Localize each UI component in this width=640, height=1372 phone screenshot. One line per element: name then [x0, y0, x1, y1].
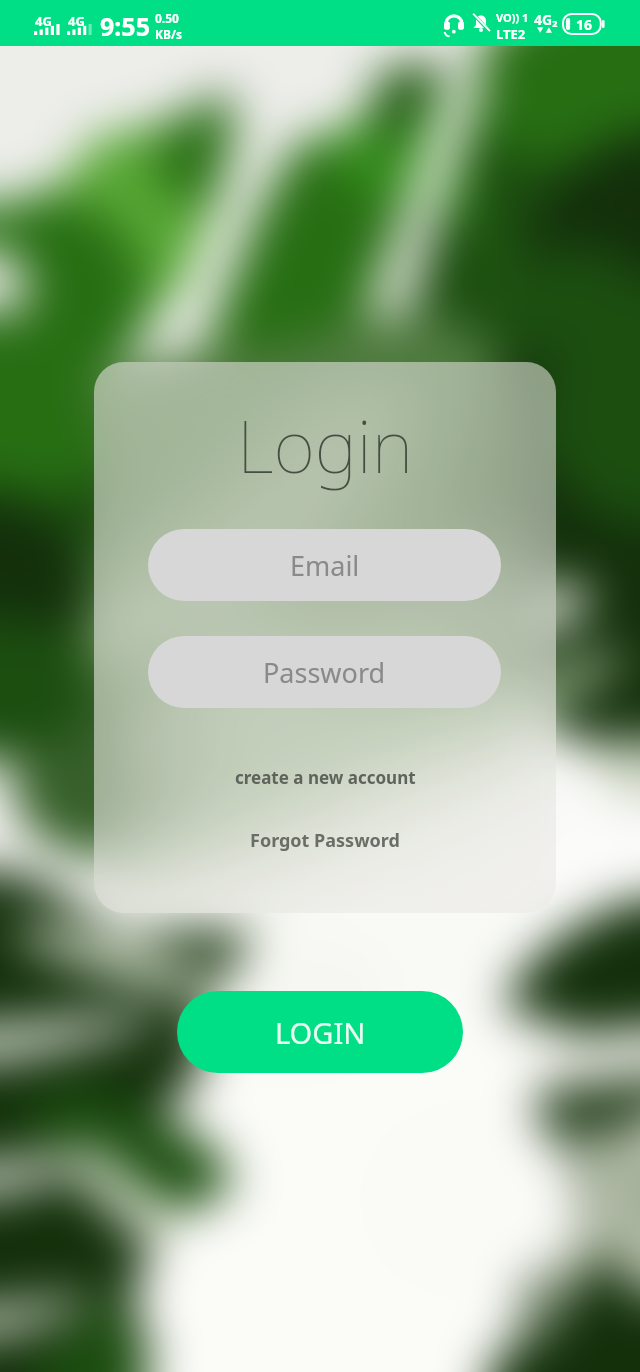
staticText: 9:55 — [100, 9, 150, 43]
other: Headset connected — [444, 15, 464, 34]
staticText: 4G — [68, 12, 85, 30]
staticText: KB/s — [155, 26, 182, 42]
staticText: Email — [290, 547, 360, 584]
staticText: VO)) 1 — [496, 10, 529, 25]
other: Silent mode — [472, 14, 490, 34]
staticText: Forgot Password — [250, 828, 400, 853]
button[interactable]: Forgot Password — [238, 820, 412, 861]
button[interactable]: create a new account — [223, 758, 428, 797]
staticText: 4G — [35, 12, 52, 30]
button[interactable]: Email — [148, 529, 501, 601]
button[interactable]: Password — [148, 636, 501, 708]
staticText: LTE2 — [496, 25, 526, 43]
staticText: 16 — [576, 15, 593, 34]
staticText: Login — [237, 396, 413, 494]
button[interactable]: LOGIN — [177, 991, 463, 1073]
staticText: 4G₂ — [534, 10, 558, 29]
staticText: Password — [263, 654, 386, 691]
staticText: 0.50 — [155, 10, 179, 26]
staticText: create a new account — [235, 766, 416, 789]
staticText: LOGIN — [275, 1013, 366, 1052]
